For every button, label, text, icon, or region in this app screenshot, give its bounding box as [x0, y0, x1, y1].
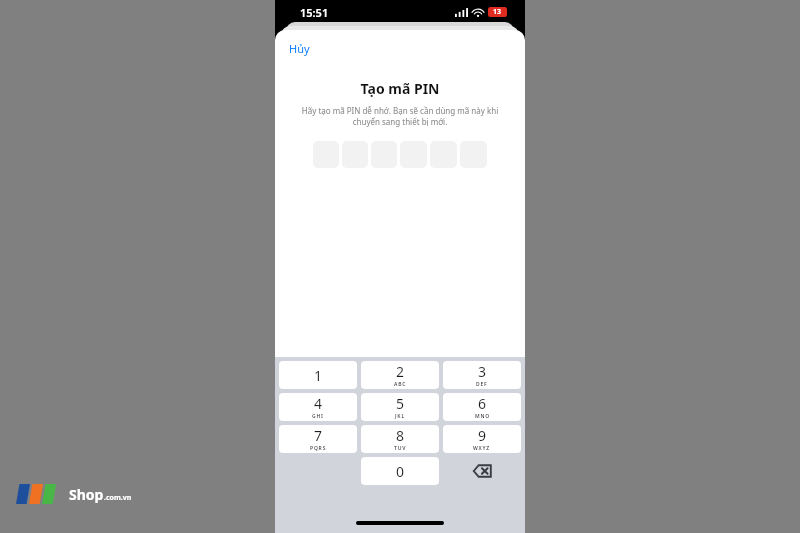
staticText: 5: [396, 394, 405, 413]
button[interactable]: Xóa: [443, 457, 521, 485]
staticText: TUV: [394, 445, 407, 452]
staticText: Hãy tạo mã PIN dễ nhớ. Bạn sẽ cần dùng m…: [291, 105, 509, 128]
staticText: 0: [396, 462, 405, 481]
staticText: 8: [396, 426, 405, 445]
staticText: DEF: [476, 381, 488, 388]
staticText: Tạo mã PIN: [275, 79, 525, 98]
staticText: 4: [314, 394, 323, 413]
staticText: Hủy: [289, 41, 310, 56]
staticText: 1: [314, 366, 323, 385]
button[interactable]: 8: [361, 425, 439, 453]
staticText: 6: [478, 394, 487, 413]
button[interactable]: 3: [443, 361, 521, 389]
staticText: WXYZ: [473, 445, 491, 452]
staticText: 7: [314, 426, 323, 445]
button[interactable]: 6: [443, 393, 521, 421]
staticText: GHI: [312, 413, 324, 420]
staticText: 2: [396, 362, 405, 381]
staticText: PQRS: [310, 445, 327, 452]
staticText: Shop: [69, 485, 104, 504]
button[interactable]: 1: [279, 361, 357, 389]
staticText: 15:51: [300, 5, 329, 20]
button[interactable]: 9: [443, 425, 521, 453]
staticText: MNO: [475, 413, 490, 420]
button[interactable]: 5: [361, 393, 439, 421]
button[interactable]: Hủy: [287, 39, 312, 58]
button[interactable]: 4: [279, 393, 357, 421]
staticText: 13: [493, 7, 502, 17]
button[interactable]: 7: [279, 425, 357, 453]
button[interactable]: 0: [361, 457, 439, 485]
staticText: 3: [478, 362, 487, 381]
button[interactable]: 2: [361, 361, 439, 389]
staticText: .com.vn: [104, 493, 132, 503]
staticText: 9: [478, 426, 487, 445]
staticText: JKL: [395, 413, 405, 420]
staticText: ABC: [394, 381, 407, 388]
